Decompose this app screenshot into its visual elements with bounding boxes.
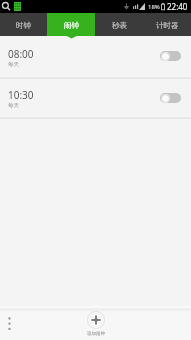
button[interactable]: Toggle alarm bbox=[160, 93, 181, 103]
staticText: 18% bbox=[148, 3, 160, 11]
button[interactable]: 时钟 bbox=[0, 13, 47, 36]
button[interactable]: 10:30 bbox=[0, 79, 191, 116]
staticText: 22:40 bbox=[167, 1, 188, 12]
staticText: 10:30 bbox=[8, 88, 34, 102]
staticText: 秒表 bbox=[112, 21, 127, 30]
staticText: 闹钟 bbox=[64, 21, 79, 30]
staticText: 08:00 bbox=[8, 47, 34, 61]
button[interactable]: More options bbox=[1, 315, 17, 331]
staticText: 时钟 bbox=[16, 21, 31, 30]
staticText: 每天 bbox=[8, 102, 19, 109]
button[interactable]: 计时器 bbox=[143, 13, 191, 36]
button[interactable]: 添加闹钟 bbox=[87, 311, 105, 335]
button[interactable]: 闹钟 bbox=[47, 13, 95, 36]
button[interactable]: 08:00 bbox=[0, 36, 191, 76]
button[interactable]: 秒表 bbox=[95, 13, 143, 36]
staticText: 添加闹钟 bbox=[87, 331, 105, 337]
staticText: 计时器 bbox=[156, 21, 179, 30]
staticText: 每天 bbox=[8, 61, 19, 68]
button[interactable]: Toggle alarm bbox=[160, 51, 181, 61]
button[interactable]: Search bbox=[2, 2, 11, 11]
